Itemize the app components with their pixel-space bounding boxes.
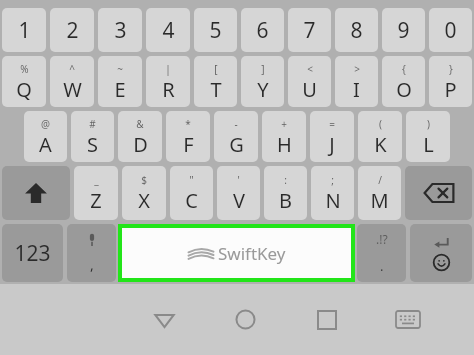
staticText: , (90, 255, 94, 274)
button[interactable]: Backspace (405, 166, 472, 220)
button[interactable]: Home (205, 284, 286, 355)
staticText: . (380, 257, 384, 275)
staticText: 0 (444, 16, 457, 45)
button[interactable]: 3 (98, 8, 142, 52)
staticText: S (87, 131, 98, 158)
staticText: V (233, 187, 245, 214)
button[interactable]: + (262, 111, 306, 162)
staticText: { (402, 62, 406, 76)
staticText: @ (41, 117, 50, 131)
staticText: ( (379, 117, 382, 131)
staticText: & (136, 117, 144, 131)
button[interactable]: 6 (241, 8, 284, 52)
staticText: F (183, 131, 194, 158)
button[interactable]: @ (24, 111, 67, 162)
staticText: .!? (376, 231, 388, 247)
staticText: - (234, 117, 238, 131)
staticText: ; (331, 173, 334, 187)
staticText: + (281, 117, 287, 131)
staticText: U (302, 76, 317, 103)
staticText: O (396, 76, 412, 103)
staticText: 9 (397, 16, 410, 45)
button[interactable]: ' (217, 166, 260, 220)
button[interactable]: ^ (50, 56, 94, 107)
staticText: * (185, 117, 191, 131)
button[interactable]: - (214, 111, 258, 162)
staticText: SwiftKey (218, 242, 286, 265)
staticText: R (162, 76, 175, 103)
button[interactable]: $ (122, 166, 166, 220)
staticText: " (189, 173, 194, 187)
staticText: : (284, 173, 287, 187)
staticText: ~ (117, 62, 123, 76)
staticText: 123 (14, 239, 51, 268)
staticText: 6 (256, 16, 269, 45)
button[interactable]: Back (124, 284, 205, 355)
button[interactable]: ; (311, 166, 354, 220)
button[interactable]: [ (194, 56, 237, 107)
button[interactable]: } (429, 56, 472, 107)
staticText: T (210, 76, 222, 103)
button[interactable]: % (2, 56, 46, 107)
staticText: ^ (69, 62, 75, 76)
button[interactable]: ) (406, 111, 450, 162)
button[interactable]: Voice input (67, 224, 116, 282)
staticText: H (277, 131, 292, 158)
staticText: > (354, 62, 360, 76)
staticText: J (329, 131, 335, 158)
staticText: I (353, 76, 360, 103)
button[interactable]: * (166, 111, 210, 162)
button[interactable]: ] (241, 56, 284, 107)
button[interactable]: 5 (194, 8, 237, 52)
button[interactable]: / (358, 166, 401, 220)
button[interactable]: 2 (50, 8, 94, 52)
button[interactable]: & (118, 111, 162, 162)
staticText: ] (261, 62, 265, 76)
staticText: D (133, 131, 148, 158)
button[interactable]: 7 (288, 8, 331, 52)
staticText: 5 (209, 16, 222, 45)
button[interactable]: 8 (335, 8, 378, 52)
button[interactable]: 9 (382, 8, 425, 52)
staticText: 2 (66, 16, 79, 45)
button[interactable]: _ (74, 166, 118, 220)
staticText: _ (94, 173, 99, 187)
button[interactable]: < (288, 56, 331, 107)
button[interactable]: 1 (2, 8, 46, 52)
staticText: ' (237, 173, 240, 187)
button[interactable]: Shift (2, 166, 70, 220)
staticText: E (114, 76, 126, 103)
staticText: B (279, 187, 292, 214)
button[interactable]: Enter and emoji (410, 224, 472, 282)
staticText: 4 (162, 16, 175, 45)
staticText: W (63, 76, 82, 103)
staticText: = (329, 117, 335, 131)
button[interactable]: Switch keyboard (367, 284, 448, 355)
staticText: 8 (350, 16, 363, 45)
button[interactable]: .!? (357, 224, 406, 282)
button[interactable]: SwiftKey (122, 228, 351, 278)
button[interactable]: 4 (146, 8, 190, 52)
staticText: P (444, 76, 457, 103)
button[interactable]: = (310, 111, 354, 162)
staticText: 3 (114, 16, 127, 45)
button[interactable]: > (335, 56, 378, 107)
button[interactable]: | (146, 56, 190, 107)
staticText: X (138, 187, 150, 214)
staticText: 7 (303, 16, 316, 45)
button[interactable]: 123 (2, 224, 63, 282)
staticText: | (165, 62, 171, 76)
staticText: M (370, 187, 389, 214)
button[interactable]: ( (358, 111, 402, 162)
button[interactable]: " (170, 166, 213, 220)
staticText: Y (257, 76, 269, 103)
staticText: ) (427, 117, 430, 131)
button[interactable]: Recent apps (286, 284, 367, 355)
button[interactable]: 0 (429, 8, 472, 52)
button[interactable]: # (71, 111, 114, 162)
button[interactable]: { (382, 56, 425, 107)
button[interactable]: : (264, 166, 307, 220)
staticText: } (449, 62, 453, 76)
button[interactable]: ~ (98, 56, 142, 107)
staticText: Z (90, 187, 102, 214)
